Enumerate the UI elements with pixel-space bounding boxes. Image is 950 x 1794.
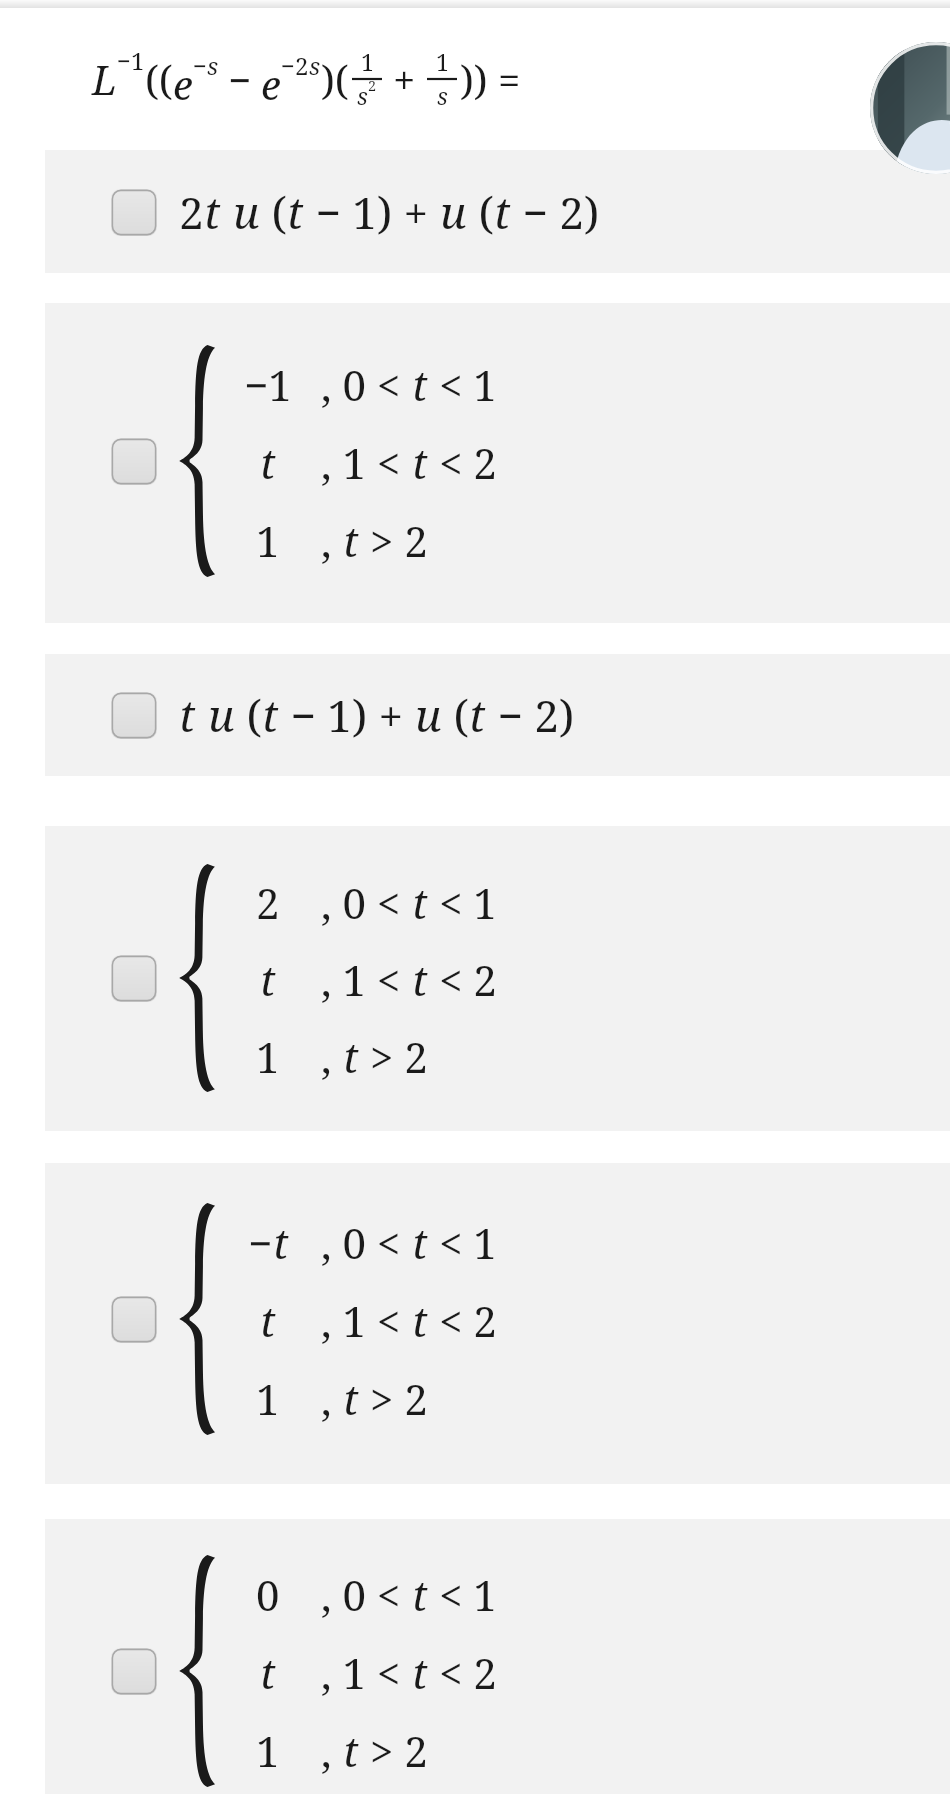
staticText: L (92, 52, 117, 106)
button[interactable]: Select this answer (45, 150, 950, 273)
staticText: ( (442, 685, 469, 745)
staticText: 1 (256, 1370, 280, 1427)
staticText: t (343, 512, 359, 569)
staticText: , (321, 1370, 343, 1427)
staticText: 1 (256, 1028, 280, 1085)
staticText: t (260, 1644, 276, 1701)
staticText: − (228, 52, 252, 106)
staticText: e (261, 57, 281, 111)
staticText: −1 (244, 356, 292, 413)
button[interactable]: Tutor video bubble (870, 42, 950, 174)
staticText: s (207, 49, 219, 82)
button[interactable]: Select this answer (45, 654, 950, 776)
staticText: > 2 (359, 1722, 428, 1779)
staticText: −1 (117, 44, 145, 77)
staticText: < 1 (428, 1566, 497, 1623)
other: Select this answer (111, 1648, 157, 1695)
staticText: t (260, 951, 276, 1008)
staticText: t (469, 685, 486, 745)
staticText: t (412, 356, 428, 413)
staticText: , (321, 1722, 343, 1779)
staticText: ( (467, 182, 494, 242)
staticText: t (343, 1028, 359, 1085)
staticText: − 2) (511, 182, 600, 242)
staticText: 2 (256, 874, 280, 931)
staticText: 1 (256, 512, 280, 569)
staticText: 1 (361, 46, 374, 78)
staticText: , (321, 512, 343, 569)
staticText: u (440, 182, 467, 242)
staticText: t (412, 1566, 428, 1623)
button[interactable]: Select this answer (45, 1519, 950, 1794)
staticText: (( (145, 52, 173, 106)
staticText: t (412, 1644, 428, 1701)
staticText: )( (321, 52, 349, 106)
button[interactable]: Select this answer (45, 826, 950, 1131)
staticText: u (208, 685, 235, 745)
staticText: , 1 < (321, 951, 412, 1008)
other: Select this answer (111, 438, 157, 485)
staticText: e (173, 57, 193, 111)
staticText: t (343, 1370, 359, 1427)
staticText: − (193, 49, 207, 82)
staticText: t (412, 951, 428, 1008)
staticText: > 2 (359, 512, 428, 569)
staticText: 1 (436, 46, 449, 78)
staticText: < 2 (428, 434, 497, 491)
staticText: s (309, 49, 321, 82)
staticText: 2 (179, 182, 204, 242)
other: Select this answer (111, 955, 157, 1002)
staticText: < 1 (428, 874, 497, 931)
staticText: −2 (281, 49, 309, 82)
staticText: t (260, 434, 276, 491)
staticText: t (204, 182, 221, 242)
staticText: t (262, 685, 279, 745)
staticText: t (412, 1214, 428, 1271)
staticText: ( (235, 685, 262, 745)
staticText: t (412, 874, 428, 931)
button[interactable]: Select this answer (45, 1163, 950, 1484)
staticText: < 2 (428, 1292, 497, 1349)
staticText: − 1) + (304, 182, 440, 242)
staticText: , 1 < (321, 1292, 412, 1349)
staticText: ( (260, 182, 287, 242)
staticText: , 0 < (321, 356, 412, 413)
staticText: , 0 < (321, 1566, 412, 1623)
staticText: )) (460, 52, 488, 106)
staticText: , 0 < (321, 874, 412, 931)
staticText: > 2 (359, 1370, 428, 1427)
staticText: − 1) + (279, 685, 415, 745)
staticText: , 1 < (321, 1644, 412, 1701)
other: Select this answer (111, 1296, 157, 1343)
button[interactable]: Select this answer (45, 303, 950, 623)
staticText: t (260, 1292, 276, 1349)
staticText: 2 (368, 76, 377, 96)
other: Select this answer (111, 189, 157, 236)
staticText: t (179, 685, 196, 745)
staticText: s (437, 80, 448, 112)
staticText: t (287, 182, 304, 242)
staticText: 1 (256, 1722, 280, 1779)
staticText: < 1 (428, 1214, 497, 1271)
staticText: 0 (256, 1566, 280, 1623)
staticText: < 2 (428, 1644, 497, 1701)
staticText: u (233, 182, 260, 242)
staticText: = (498, 52, 521, 106)
staticText: s (357, 80, 368, 112)
staticText: < 1 (428, 356, 497, 413)
staticText: < 2 (428, 951, 497, 1008)
staticText: t (273, 1214, 289, 1271)
staticText: t (494, 182, 511, 242)
staticText: , 1 < (321, 434, 412, 491)
staticText: , (321, 1028, 343, 1085)
staticText: > 2 (359, 1028, 428, 1085)
staticText: t (343, 1722, 359, 1779)
staticText: − 2) (486, 685, 575, 745)
staticText: − (248, 1214, 273, 1271)
staticText: t (412, 1292, 428, 1349)
staticText: , 0 < (321, 1214, 412, 1271)
staticText: u (415, 685, 442, 745)
staticText: t (412, 434, 428, 491)
